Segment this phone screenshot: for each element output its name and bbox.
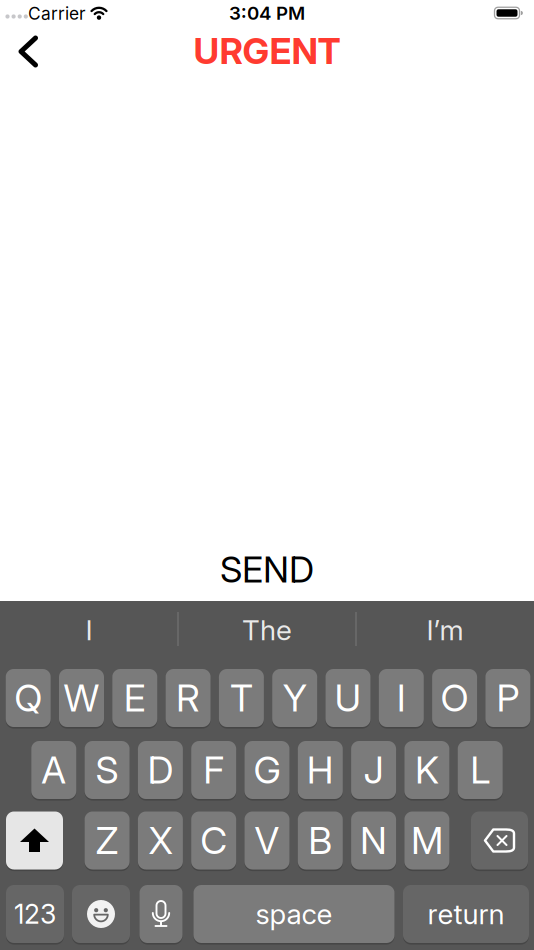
staticText: A [41, 748, 66, 792]
button[interactable]: W [59, 668, 104, 728]
staticText: M [411, 818, 443, 862]
staticText: E [124, 676, 146, 720]
staticText: H [307, 748, 334, 792]
button[interactable]: I [379, 668, 424, 728]
button[interactable]: P [485, 668, 530, 728]
button[interactable]: O [432, 668, 477, 728]
staticText: S [96, 748, 119, 792]
button[interactable]: F [191, 740, 236, 800]
staticText: F [203, 748, 224, 792]
button[interactable]: 123 [6, 884, 64, 944]
staticText: K [415, 748, 439, 792]
staticText: B [308, 818, 332, 862]
button[interactable]: Shift [6, 810, 63, 870]
button[interactable]: E [112, 668, 157, 728]
staticText: SEND [220, 548, 314, 591]
staticText: return [427, 897, 504, 930]
button[interactable]: Emoji [72, 884, 130, 944]
button[interactable]: U [325, 668, 370, 728]
button[interactable]: SEND [220, 548, 314, 591]
button[interactable]: N [351, 810, 396, 870]
button[interactable]: I’m [360, 607, 530, 653]
button[interactable]: X [138, 810, 183, 870]
staticText: I [397, 676, 406, 720]
staticText: R [176, 676, 200, 720]
button[interactable]: J [351, 740, 396, 800]
staticText: Y [283, 676, 307, 720]
staticText: O [441, 676, 469, 720]
button[interactable]: Dictate [139, 884, 182, 944]
staticText: V [254, 818, 279, 862]
button[interactable]: Q [6, 668, 51, 728]
staticText: L [470, 748, 490, 792]
button[interactable]: Y [272, 668, 317, 728]
button[interactable]: C [191, 810, 236, 870]
staticText: G [253, 748, 280, 792]
button[interactable]: D [138, 740, 183, 800]
staticText: Z [96, 818, 119, 862]
button[interactable]: G [244, 740, 289, 800]
staticText: P [496, 676, 519, 720]
button[interactable]: Back [19, 35, 41, 68]
button[interactable]: A [31, 740, 76, 800]
staticText: 3:04 PM [229, 2, 305, 24]
staticText: 123 [14, 898, 56, 930]
button[interactable]: H [298, 740, 343, 800]
button[interactable]: The [182, 607, 352, 653]
staticText: N [360, 818, 387, 862]
staticText: C [200, 818, 227, 862]
staticText: I [85, 613, 92, 646]
staticText: URGENT [193, 30, 340, 72]
staticText: Carrier [28, 3, 86, 24]
staticText: The [242, 613, 292, 646]
staticText: Q [14, 676, 42, 720]
staticText: space [255, 897, 332, 930]
button[interactable]: Z [85, 810, 130, 870]
button[interactable]: R [166, 668, 211, 728]
staticText: I’m [426, 613, 463, 646]
button[interactable]: return [403, 884, 529, 944]
button[interactable]: I [4, 607, 174, 653]
button[interactable]: M [404, 810, 449, 870]
button[interactable]: S [85, 740, 130, 800]
staticText: T [230, 676, 253, 720]
button[interactable]: B [298, 810, 343, 870]
staticText: J [364, 748, 384, 792]
button[interactable]: space [193, 884, 394, 944]
button[interactable]: L [458, 740, 503, 800]
button[interactable]: Delete [471, 810, 528, 870]
button[interactable]: T [219, 668, 264, 728]
button[interactable]: V [244, 810, 289, 870]
staticText: W [63, 676, 99, 720]
staticText: X [148, 818, 172, 862]
staticText: D [147, 748, 173, 792]
button[interactable]: K [404, 740, 449, 800]
staticText: U [334, 676, 361, 720]
